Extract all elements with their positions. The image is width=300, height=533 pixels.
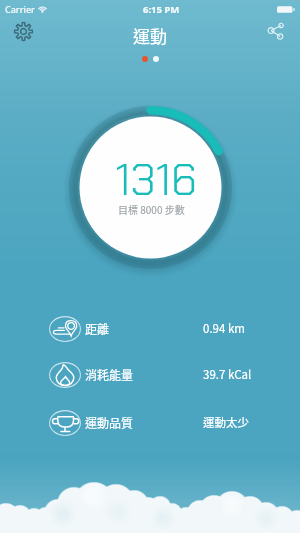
staticText: 運動太少 xyxy=(203,414,249,431)
button[interactable]: Share xyxy=(258,13,293,48)
staticText: 運動品質 xyxy=(85,414,134,431)
staticText: 0.94 km xyxy=(203,320,245,337)
staticText: 1316 xyxy=(115,151,197,208)
staticText: 運動 xyxy=(0,23,300,48)
button[interactable]: 運動品質 xyxy=(0,399,300,446)
staticText: 消耗能量 xyxy=(85,366,134,383)
button[interactable]: Settings xyxy=(6,14,41,49)
staticText: 6:15 PM xyxy=(143,3,180,16)
staticText: Carrier xyxy=(5,3,35,15)
staticText: 目標 8000 步數 xyxy=(118,202,185,216)
staticText: 距離 xyxy=(85,320,110,337)
staticText: 39.7 kCal xyxy=(203,366,252,383)
button[interactable]: 消耗能量 xyxy=(0,351,300,398)
button[interactable]: 距離 xyxy=(0,305,300,352)
